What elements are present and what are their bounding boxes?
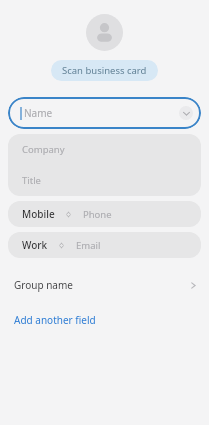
button[interactable]: Scan business card <box>51 60 158 81</box>
button[interactable]: Group name <box>0 274 209 296</box>
button[interactable]: Company <box>8 134 201 165</box>
staticText: Email <box>76 239 101 252</box>
button[interactable]: Expand name fields <box>179 106 193 120</box>
staticText: Group name <box>14 278 73 292</box>
button[interactable]: Mobile <box>8 201 201 227</box>
staticText: Phone <box>83 208 112 221</box>
staticText: Work <box>22 238 48 252</box>
button[interactable]: Name <box>8 97 201 129</box>
staticText: Company <box>22 143 65 156</box>
staticText: Name <box>24 106 53 120</box>
staticText: Title <box>22 174 41 187</box>
button[interactable]: Work <box>8 232 201 258</box>
button[interactable]: Add another field <box>0 310 209 330</box>
staticText: Scan business card <box>62 64 147 77</box>
button[interactable]: Add photo <box>86 14 123 51</box>
button[interactable]: Title <box>8 165 201 196</box>
staticText: Add another field <box>14 313 96 327</box>
staticText: Mobile <box>22 207 55 221</box>
